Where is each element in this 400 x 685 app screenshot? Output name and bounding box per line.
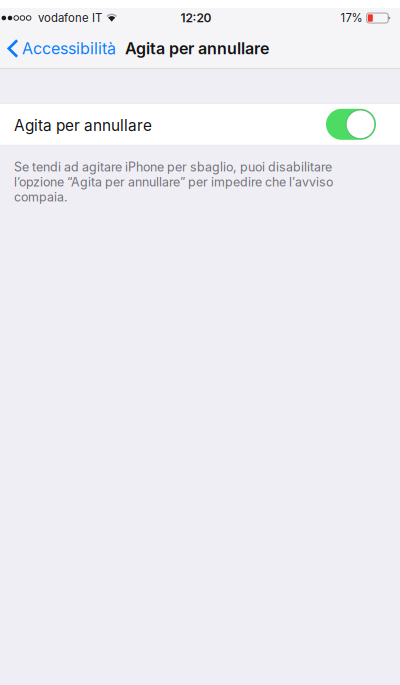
staticText: Accessibilità	[22, 39, 116, 58]
staticText: vodafone IT	[38, 11, 102, 25]
staticText: 17%	[341, 11, 363, 25]
button[interactable]: Agita per annullare	[0, 103, 400, 146]
staticText: Agita per annullare	[14, 116, 152, 135]
button[interactable]: Accessibilità	[0, 29, 125, 67]
staticText: Agita per annullare	[125, 39, 269, 58]
staticText: 12:20	[180, 11, 211, 25]
staticText: Se tendi ad agitare iPhone per sbaglio, …	[14, 160, 333, 205]
